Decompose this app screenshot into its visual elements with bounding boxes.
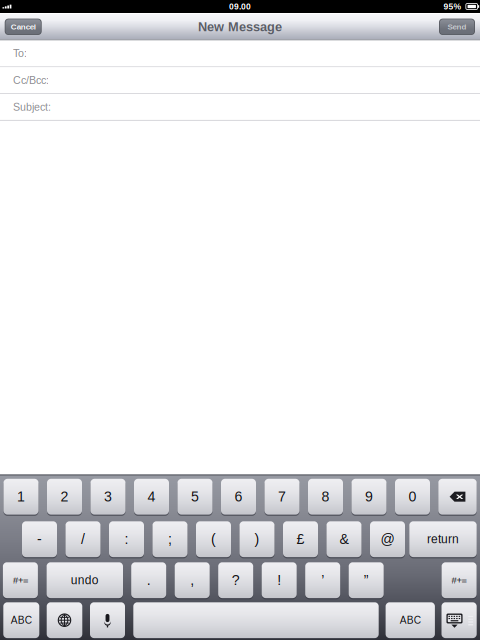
button[interactable]: 2 xyxy=(47,479,82,515)
staticText: 9 xyxy=(365,489,373,505)
button[interactable]: @ xyxy=(370,521,405,557)
staticText: @ xyxy=(380,531,394,547)
button[interactable]: ’ xyxy=(305,562,340,598)
staticText: - xyxy=(37,531,42,547)
button[interactable]: ” xyxy=(349,562,384,598)
staticText: ; xyxy=(168,531,172,547)
button[interactable]: Hide keyboard xyxy=(441,602,477,638)
staticText: 6 xyxy=(234,489,242,505)
staticText: New Message xyxy=(198,20,282,34)
staticText: 1 xyxy=(17,489,25,505)
button[interactable]: Cc/Bcc: xyxy=(0,67,480,94)
staticText: undo xyxy=(71,573,99,587)
staticText: ABC xyxy=(11,614,32,626)
staticText: 4 xyxy=(147,489,155,505)
staticText: ! xyxy=(277,572,281,588)
staticText: 3 xyxy=(104,489,112,505)
button[interactable]: 6 xyxy=(221,479,256,515)
button[interactable]: 8 xyxy=(308,479,343,515)
staticText: , xyxy=(190,572,194,588)
staticText: ( xyxy=(211,531,216,547)
button[interactable]: 1 xyxy=(3,479,38,515)
staticText: 2 xyxy=(60,489,68,505)
button[interactable]: £ xyxy=(283,521,318,557)
button[interactable]: . xyxy=(131,562,166,598)
button[interactable]: 3 xyxy=(90,479,125,515)
staticText: ” xyxy=(364,572,369,588)
button[interactable]: Letters keyboard xyxy=(386,602,435,638)
staticText: & xyxy=(339,531,348,547)
button[interactable]: Symbols xyxy=(3,562,38,598)
button[interactable]: 5 xyxy=(177,479,212,515)
staticText: 5 xyxy=(191,489,199,505)
staticText: : xyxy=(124,531,128,547)
staticText: / xyxy=(81,531,85,547)
staticText: #+= xyxy=(13,575,28,585)
staticText: 0 xyxy=(408,489,416,505)
button[interactable]: Letters keyboard xyxy=(3,602,39,638)
staticText: Cancel xyxy=(11,22,36,31)
button[interactable]: ; xyxy=(152,521,187,557)
button[interactable]: ! xyxy=(262,562,297,598)
staticText: return xyxy=(427,532,459,546)
button[interactable]: Symbols xyxy=(442,562,477,598)
staticText: £ xyxy=(296,531,304,547)
staticText: 95% xyxy=(443,2,461,11)
staticText: Send xyxy=(447,22,466,31)
button[interactable]: & xyxy=(326,521,361,557)
button[interactable]: Send xyxy=(439,19,475,35)
button[interactable]: 4 xyxy=(134,479,169,515)
button[interactable]: Next keyboard xyxy=(47,602,82,638)
staticText: . xyxy=(147,572,151,588)
button[interactable]: / xyxy=(65,521,100,557)
button[interactable]: Cancel xyxy=(5,19,42,35)
button[interactable]: ) xyxy=(239,521,274,557)
button[interactable]: 0 xyxy=(395,479,430,515)
button[interactable]: ? xyxy=(218,562,253,598)
button[interactable]: : xyxy=(109,521,144,557)
button[interactable]: 9 xyxy=(351,479,386,515)
button[interactable]: return xyxy=(409,521,477,557)
button[interactable]: - xyxy=(22,521,57,557)
button[interactable]: To: xyxy=(0,40,480,67)
staticText: 7 xyxy=(278,489,286,505)
staticText: #+= xyxy=(452,575,467,585)
button[interactable]: Subject: xyxy=(0,94,480,121)
staticText: ’ xyxy=(321,572,324,588)
staticText: ) xyxy=(254,531,259,547)
staticText: 09.00 xyxy=(229,2,251,11)
button[interactable]: ( xyxy=(196,521,231,557)
button[interactable]: undo xyxy=(47,562,123,598)
button[interactable]: Dictation xyxy=(90,602,125,638)
button[interactable]: space xyxy=(133,602,379,638)
staticText: ? xyxy=(232,572,240,588)
staticText: 8 xyxy=(321,489,329,505)
staticText: Cc/Bcc: xyxy=(13,74,49,86)
button[interactable]: 7 xyxy=(264,479,299,515)
button[interactable]: Delete xyxy=(438,479,477,515)
staticText: To: xyxy=(13,47,27,59)
staticText: ABC xyxy=(400,614,421,626)
button[interactable]: , xyxy=(175,562,210,598)
staticText: Subject: xyxy=(13,101,51,113)
